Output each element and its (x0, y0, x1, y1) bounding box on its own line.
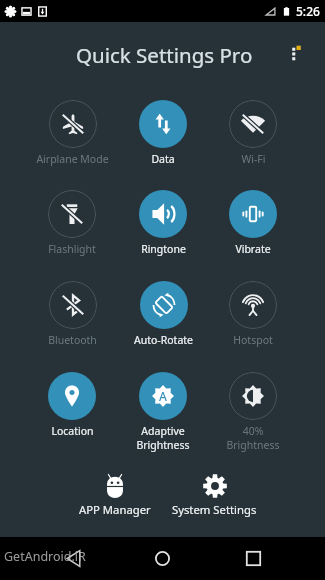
button[interactable]: APP Manager (60, 474, 170, 524)
staticText: Hotspot (233, 333, 273, 347)
staticText: Quick Settings Pro (76, 41, 253, 69)
button[interactable]: Ringtone (118, 190, 208, 278)
button[interactable]: Bluetooth (27, 281, 117, 369)
button[interactable]: Location (27, 372, 117, 460)
staticText: Data (151, 152, 175, 166)
staticText: Adaptive Brightness (136, 424, 190, 452)
button[interactable]: 40% Brightness (208, 372, 298, 460)
button[interactable]: Airplane Mode (27, 100, 117, 188)
staticText: APP Manager (79, 502, 151, 517)
button[interactable]: Wi-Fi (208, 100, 298, 188)
staticText: Location (51, 424, 94, 438)
staticText: Bluetooth (48, 333, 97, 347)
button[interactable]: Home (144, 540, 180, 576)
staticText: Vibrate (235, 242, 271, 256)
staticText: A (159, 388, 167, 404)
button[interactable]: Back (55, 540, 91, 576)
button[interactable]: Recents (235, 540, 271, 576)
staticText: Wi-Fi (241, 152, 266, 166)
button[interactable]: Hotspot (208, 281, 298, 369)
button[interactable]: System Settings (159, 474, 269, 524)
staticText: 40% Brightness (226, 424, 280, 452)
button[interactable]: Auto-Rotate (118, 281, 208, 369)
staticText: GetAndroid.iR (4, 548, 86, 565)
button[interactable]: Flashlight (27, 190, 117, 278)
button[interactable]: Data (118, 100, 208, 188)
staticText: System Settings (172, 502, 257, 517)
staticText: Auto-Rotate (134, 333, 193, 347)
button[interactable]: A (118, 372, 208, 460)
button[interactable]: More options (283, 41, 305, 63)
staticText: Ringtone (141, 242, 186, 256)
staticText: Airplane Mode (36, 152, 109, 166)
staticText: 5:26 (296, 3, 320, 19)
staticText: Flashlight (48, 242, 96, 256)
button[interactable]: Vibrate (208, 190, 298, 278)
